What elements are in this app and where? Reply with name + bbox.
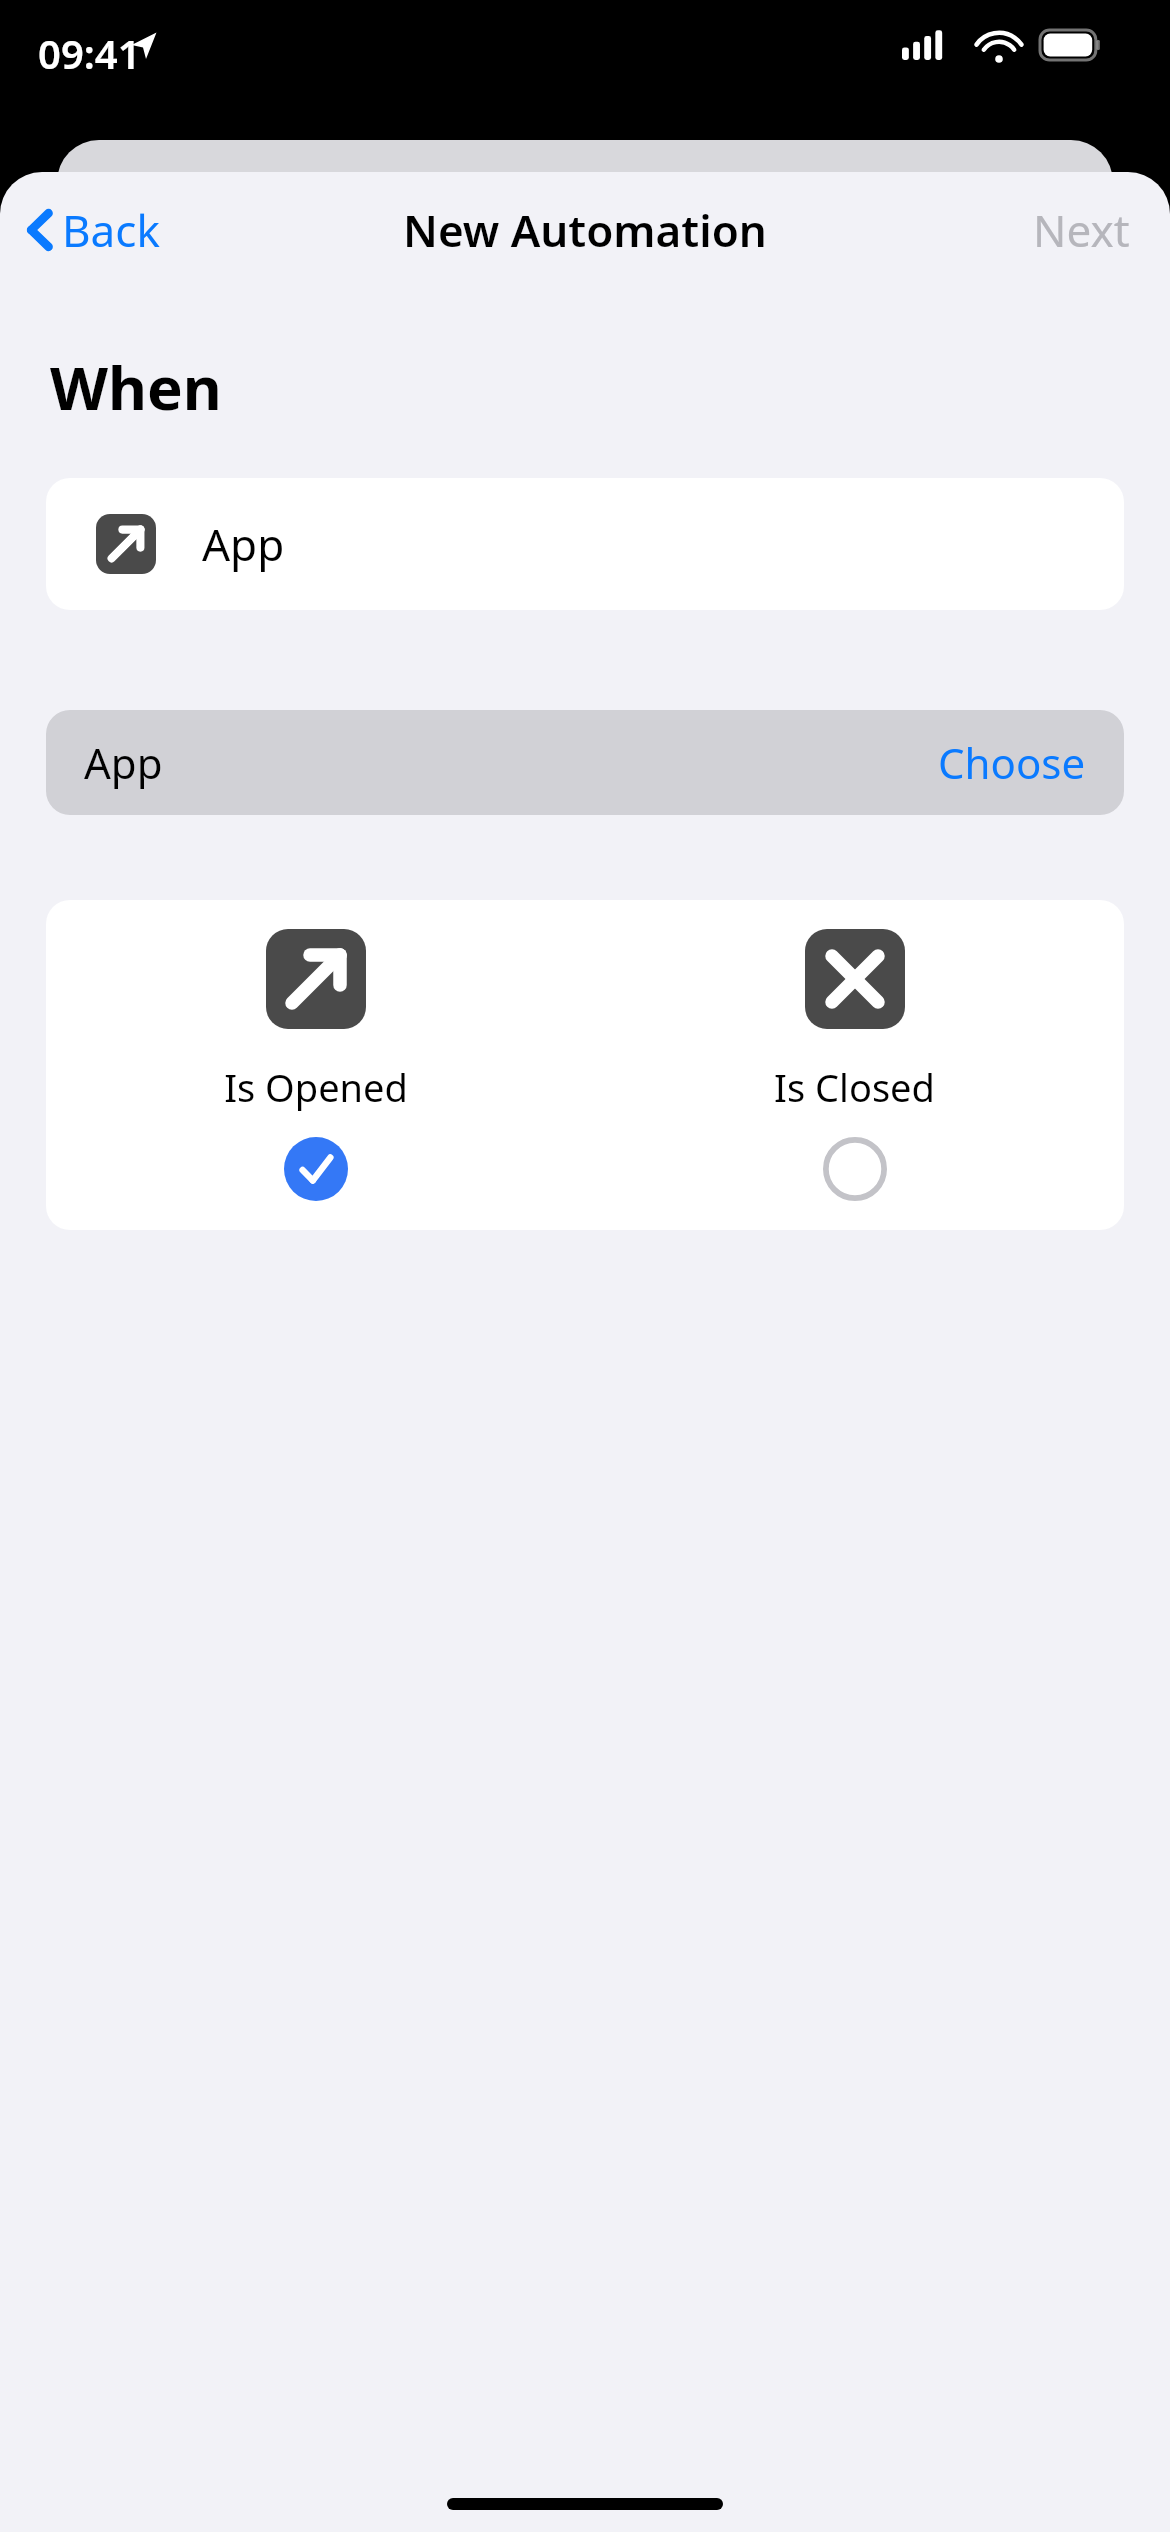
staticText: Back <box>62 200 160 260</box>
staticText: Is Opened <box>224 1061 408 1113</box>
button[interactable]: Back <box>18 192 168 268</box>
button[interactable]: App <box>46 710 1124 815</box>
staticText: Choose <box>938 734 1086 791</box>
other: Is Opened <box>266 929 366 1029</box>
button[interactable]: Is Opened <box>46 919 585 1211</box>
staticText: App <box>202 514 285 574</box>
button[interactable]: Is Closed <box>585 919 1124 1211</box>
staticText: App <box>84 734 163 791</box>
button[interactable]: App <box>46 478 1124 610</box>
staticText: New Automation <box>403 200 767 260</box>
other: Is Closed <box>805 929 905 1029</box>
button[interactable]: Next <box>1025 192 1138 268</box>
staticText: Next <box>1033 200 1130 260</box>
staticText: When <box>50 346 222 428</box>
staticText: 09:41 <box>38 26 141 80</box>
staticText: Is Closed <box>774 1061 935 1113</box>
